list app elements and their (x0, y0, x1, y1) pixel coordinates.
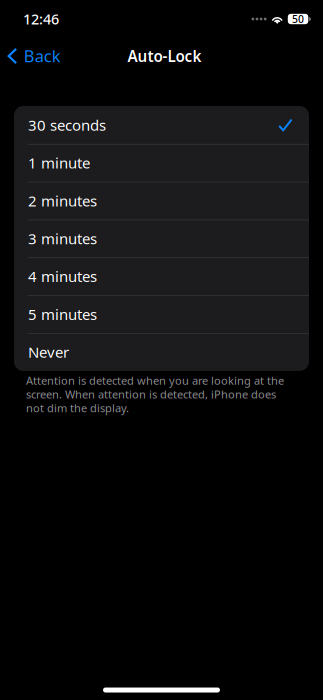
staticText: 50 (292, 12, 304, 26)
button[interactable]: 1 minute (14, 144, 309, 182)
staticText: 2 minutes (28, 190, 97, 211)
staticText: 30 seconds (28, 115, 106, 135)
button[interactable]: Never (14, 333, 309, 371)
staticText: 12:46 (23, 9, 59, 29)
button[interactable]: 2 minutes (14, 182, 309, 220)
staticText: Attention is detected when you are looki… (26, 373, 284, 415)
staticText: 4 minutes (28, 266, 97, 286)
button[interactable]: Selected (14, 106, 309, 144)
button[interactable]: 4 minutes (14, 257, 309, 295)
button[interactable]: Back (0, 38, 70, 74)
staticText: 1 minute (28, 153, 90, 173)
staticText: 3 minutes (28, 228, 97, 249)
staticText: 5 minutes (28, 304, 97, 324)
button[interactable]: 5 minutes (14, 295, 309, 333)
staticText: Auto-Lock (127, 46, 201, 66)
button[interactable]: 3 minutes (14, 220, 309, 257)
staticText: Never (28, 342, 69, 362)
staticText: Back (24, 45, 61, 67)
